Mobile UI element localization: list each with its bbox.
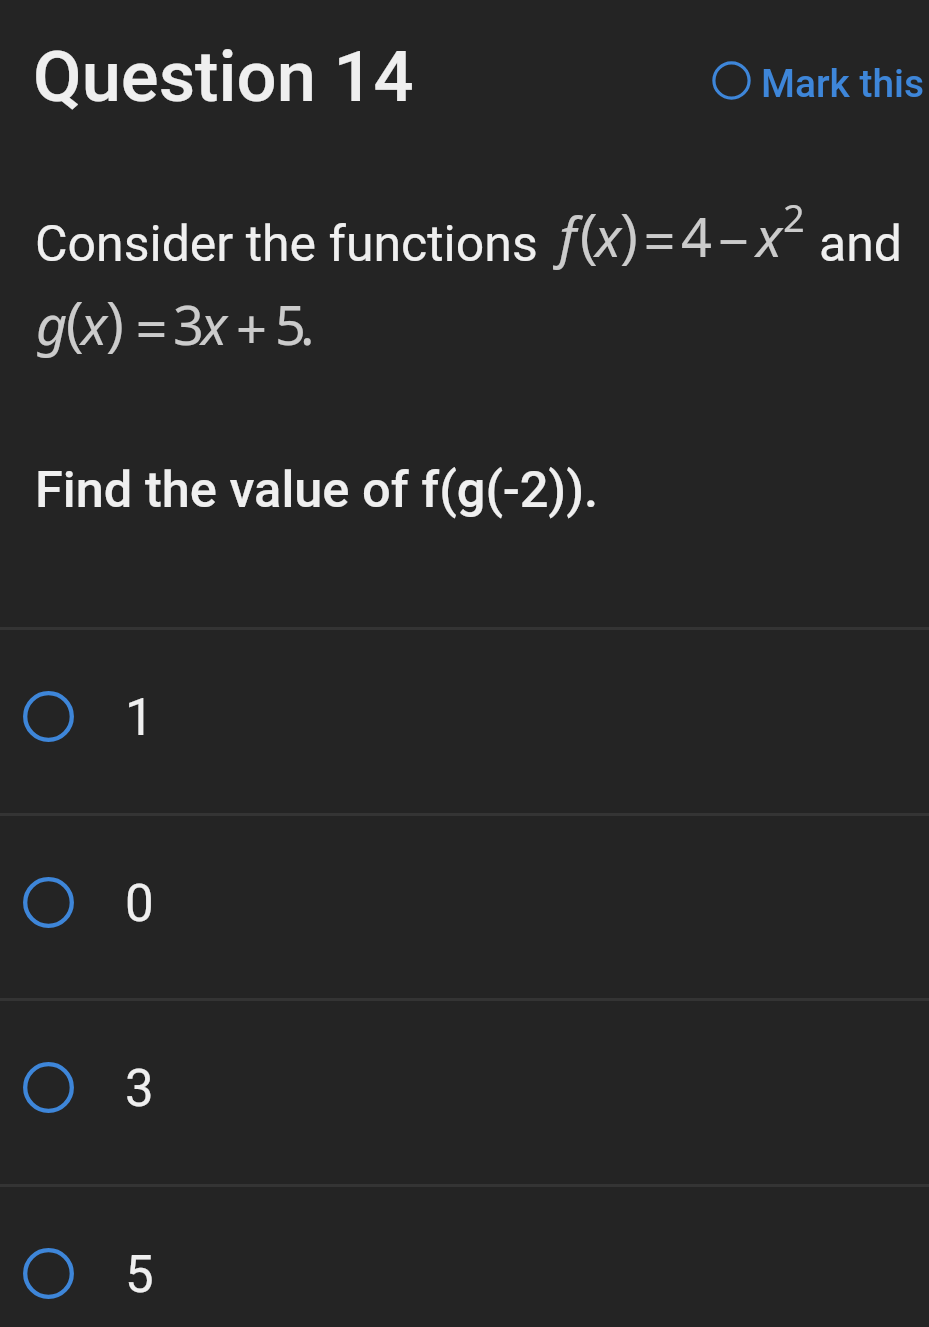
staticText: 3 [125,1059,154,1119]
staticText: Find the value of f(g(-2)). [35,460,599,519]
staticText: ( [580,199,598,280]
staticText: ) [620,199,638,280]
staticText: Mark this [761,61,924,106]
staticText: . [300,287,315,368]
staticText: 𝘹 [754,199,783,280]
button[interactable]: 0 [0,813,929,999]
staticText: = [136,287,167,368]
staticText: Consider the functions [35,215,538,274]
staticText: 𝘹 [199,287,228,368]
staticText: 2 [783,191,805,248]
staticText: 𝘹 [79,287,108,368]
staticText: 𝘧 [552,199,577,280]
staticText: 𝘨 [36,287,68,368]
staticText: and [819,215,903,274]
staticText: 5 [125,1245,154,1305]
staticText: 1 [125,688,154,748]
button[interactable]: 3 [0,998,929,1184]
staticText: 4 [681,199,712,280]
staticText: 𝘹 [593,199,622,280]
staticText: 0 [125,874,154,934]
button[interactable]: Mark this and return [710,57,924,104]
staticText: − [718,199,749,280]
staticText: + [236,287,267,368]
staticText: ) [106,287,124,368]
staticText: ( [66,287,84,368]
staticText: 3 [173,287,204,368]
button[interactable]: 5 [0,1184,929,1327]
button[interactable]: 1 [0,627,929,813]
staticText: Question 14 [33,36,414,119]
staticText: = [644,199,675,280]
staticText: 5 [275,287,306,368]
